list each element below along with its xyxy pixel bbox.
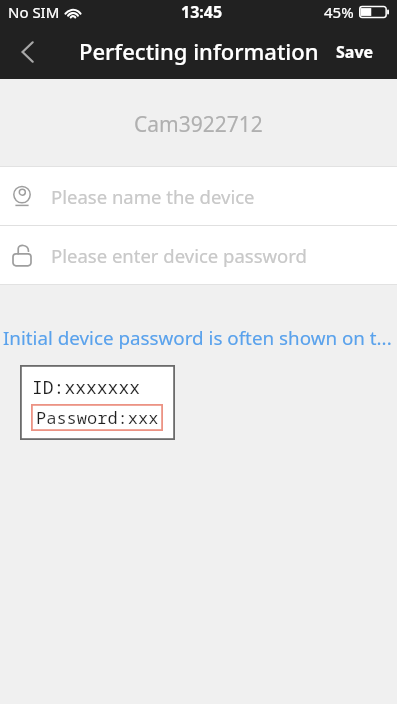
button[interactable]: Initial device password is often shown o… — [0, 324, 397, 352]
button[interactable]: Save — [336, 41, 374, 63]
staticText: 13:45 — [181, 1, 223, 23]
button[interactable]: Please name the device — [0, 167, 397, 225]
button[interactable]: Back — [0, 28, 54, 79]
staticText: Save — [336, 41, 374, 63]
staticText: Initial device password is often shown o… — [3, 325, 392, 351]
staticText: Password:xxx — [36, 406, 159, 429]
staticText: No SIM — [8, 2, 60, 22]
staticText: 45% — [324, 2, 354, 22]
button[interactable]: Please enter device password — [0, 226, 397, 284]
staticText: Cam3922712 — [134, 110, 263, 139]
staticText: Please enter device password — [51, 243, 307, 268]
staticText: ID:xxxxxxx — [32, 375, 140, 400]
staticText: Please name the device — [51, 184, 255, 209]
staticText: Perfecting information — [79, 36, 319, 66]
